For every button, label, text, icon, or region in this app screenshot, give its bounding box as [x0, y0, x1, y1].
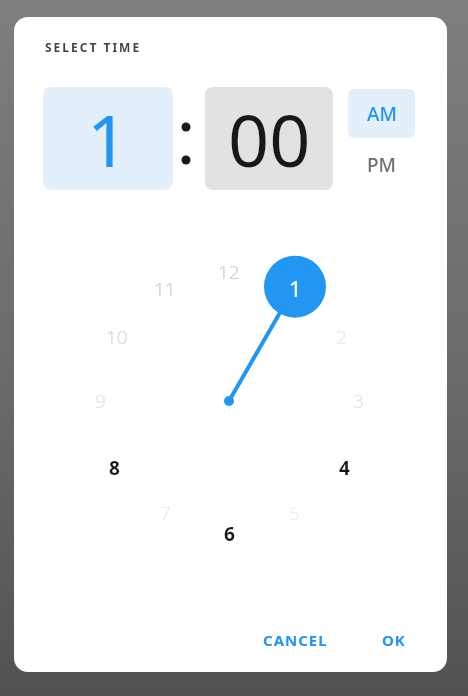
- button[interactable]: 11: [145, 275, 185, 303]
- staticText: 9: [95, 388, 106, 414]
- button[interactable]: 6: [209, 520, 249, 548]
- button[interactable]: 12: [209, 258, 249, 286]
- button[interactable]: AM: [348, 89, 415, 138]
- staticText: 10: [106, 324, 128, 350]
- staticText: 1: [289, 273, 302, 301]
- button[interactable]: 00: [205, 87, 333, 190]
- button[interactable]: 10: [97, 323, 137, 351]
- staticText: 5: [289, 500, 300, 526]
- staticText: 6: [224, 521, 235, 547]
- button[interactable]: 8: [94, 454, 134, 482]
- staticText: 12: [218, 259, 240, 285]
- staticText: 3: [353, 388, 364, 414]
- staticText: CANCEL: [263, 630, 328, 650]
- staticText: 11: [154, 276, 176, 302]
- button[interactable]: 9: [80, 387, 120, 415]
- staticText: 00: [228, 90, 311, 188]
- button[interactable]: 2: [321, 323, 361, 351]
- button[interactable]: CANCEL: [255, 622, 335, 658]
- button[interactable]: PM: [348, 140, 415, 189]
- staticText: 1: [87, 90, 129, 188]
- staticText: PM: [367, 152, 397, 178]
- staticText: SELECT TIME: [45, 39, 142, 55]
- staticText: 4: [339, 455, 350, 481]
- button[interactable]: 1: [43, 87, 173, 190]
- staticText: 7: [160, 500, 171, 526]
- staticText: AM: [367, 101, 397, 127]
- button[interactable]: OK: [370, 622, 418, 658]
- button[interactable]: 4: [324, 454, 364, 482]
- staticText: OK: [382, 630, 406, 650]
- staticText: 2: [336, 324, 347, 350]
- staticText: 8: [109, 455, 120, 481]
- button[interactable]: 3: [338, 387, 378, 415]
